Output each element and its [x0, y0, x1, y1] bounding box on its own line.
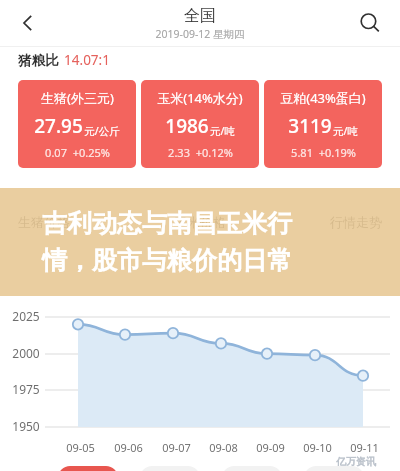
staticText: 09-06	[114, 440, 143, 455]
staticText: 2025	[12, 308, 40, 324]
staticText: 生猪(外三元)	[41, 89, 114, 107]
staticText: 亿万资讯	[336, 455, 376, 468]
staticText: 全国	[184, 6, 216, 26]
staticText: 1986	[165, 113, 209, 139]
staticText: 0.07 +0.25%	[45, 145, 110, 160]
staticText: 27.95	[34, 113, 83, 139]
button[interactable]: Search	[350, 3, 390, 43]
staticText: 09-11	[350, 440, 379, 455]
button[interactable]: 玉米(14%水分)	[141, 80, 259, 168]
staticText: 行情走势	[330, 214, 382, 230]
staticText: 豆粕(43%蛋白)	[280, 89, 366, 107]
staticText: 09-07	[162, 440, 191, 455]
staticText: 09-05	[66, 440, 95, 455]
button[interactable]: 生猪(外三元)	[18, 80, 136, 168]
staticText: 09-08	[209, 440, 238, 455]
staticText: 猪粮比	[18, 52, 59, 69]
button[interactable]	[222, 466, 282, 471]
staticText: 1950	[12, 418, 40, 434]
staticText: 生猪价格	[18, 214, 70, 230]
button[interactable]	[140, 466, 200, 471]
staticText: 吉利动态与南昌玉米行	[42, 208, 292, 239]
staticText: 元/吨	[333, 124, 358, 138]
staticText: 2000	[12, 345, 40, 361]
staticText: 玉米价格	[174, 214, 226, 230]
staticText: 情，股市与粮价的日常	[42, 245, 292, 276]
staticText: 14.07:1	[64, 51, 110, 69]
button[interactable]: 豆粕(43%蛋白)	[264, 80, 382, 168]
staticText: 1975	[12, 381, 40, 397]
staticText: 2.33 +0.12%	[168, 145, 233, 160]
button[interactable]	[304, 466, 364, 471]
staticText: 09-10	[303, 440, 332, 455]
button[interactable]: Back	[8, 3, 48, 43]
staticText: 元/公斤	[84, 124, 120, 138]
staticText: 2019-09-12 星期四	[155, 27, 245, 41]
staticText: 3119	[288, 113, 332, 139]
staticText: 09-09	[256, 440, 285, 455]
staticText: 玉米(14%水分)	[157, 89, 243, 107]
staticText: 5.81 +0.19%	[291, 145, 356, 160]
staticText: 元/吨	[210, 124, 235, 138]
button[interactable]	[58, 466, 118, 471]
